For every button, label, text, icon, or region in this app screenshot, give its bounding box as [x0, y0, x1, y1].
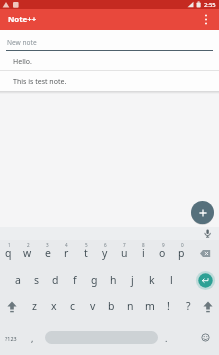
button[interactable]: j — [123, 268, 142, 292]
staticText: ? — [186, 299, 191, 313]
button[interactable]: a — [8, 268, 27, 292]
button[interactable]: l — [162, 268, 181, 292]
staticText: l — [170, 273, 173, 287]
staticText: z — [32, 299, 37, 313]
staticText: This is test note. — [13, 77, 67, 87]
staticText: 2 — [27, 242, 30, 248]
staticText: 5 — [85, 242, 88, 248]
button[interactable] — [201, 299, 215, 315]
staticText: Note++ — [8, 14, 37, 25]
button[interactable]: ! — [159, 294, 178, 318]
staticText: 6 — [104, 242, 107, 248]
button[interactable]: n — [121, 294, 140, 318]
staticText: u — [121, 246, 128, 260]
button[interactable]: ?123 — [2, 330, 20, 346]
button[interactable] — [198, 330, 213, 345]
staticText: r — [64, 246, 69, 260]
staticText: New note — [7, 38, 37, 47]
staticText: Hello. — [13, 57, 32, 67]
staticText: e — [45, 246, 51, 260]
button[interactable]: Note++ — [0, 9, 219, 30]
button[interactable]: o — [153, 241, 172, 265]
staticText: , — [31, 332, 34, 344]
staticText: 7 — [123, 242, 126, 248]
button[interactable]: w — [18, 241, 37, 265]
button[interactable]: c — [63, 294, 82, 318]
staticText: 4 — [65, 242, 68, 248]
staticText: y — [102, 246, 108, 260]
staticText: 2:55 — [204, 1, 216, 9]
button[interactable]: e — [38, 241, 57, 265]
button[interactable]: r — [57, 241, 76, 265]
staticText: i — [142, 246, 145, 260]
button[interactable] — [198, 11, 214, 28]
staticText: f — [73, 273, 77, 287]
staticText: a — [15, 273, 21, 287]
staticText: h — [110, 273, 117, 287]
button[interactable]: k — [142, 268, 161, 292]
staticText: 0 — [181, 242, 184, 248]
staticText: c — [70, 299, 76, 313]
staticText: m — [145, 299, 155, 313]
staticText: . — [165, 332, 168, 344]
staticText: j — [131, 273, 134, 287]
staticText: v — [90, 299, 96, 313]
staticText: s — [34, 273, 40, 287]
button[interactable] — [195, 270, 216, 291]
staticText: 9 — [162, 242, 165, 248]
button[interactable]: y — [95, 241, 114, 265]
staticText: n — [127, 299, 134, 313]
button[interactable]: v — [83, 294, 102, 318]
staticText: ! — [167, 299, 170, 313]
button[interactable]: z — [25, 294, 44, 318]
staticText: p — [178, 246, 185, 260]
button[interactable] — [191, 201, 214, 224]
staticText: 8 — [142, 242, 145, 248]
button[interactable]: ? — [179, 294, 198, 318]
button[interactable]: h — [104, 268, 123, 292]
staticText: q — [5, 246, 12, 260]
button[interactable]: f — [65, 268, 84, 292]
button[interactable] — [45, 331, 158, 344]
staticText: d — [52, 273, 59, 287]
staticText: b — [108, 299, 115, 313]
button[interactable]: q — [0, 241, 18, 265]
staticText: k — [149, 273, 155, 287]
button[interactable]: Hello. — [0, 52, 219, 70]
button[interactable]: , — [23, 326, 42, 350]
button[interactable]: g — [85, 268, 104, 292]
button[interactable]: d — [46, 268, 65, 292]
staticText: x — [51, 299, 57, 313]
button[interactable]: b — [102, 294, 121, 318]
button[interactable]: s — [27, 268, 46, 292]
button[interactable] — [196, 245, 214, 262]
button[interactable] — [5, 299, 19, 315]
staticText: 3 — [46, 242, 49, 248]
button[interactable] — [203, 229, 212, 238]
staticText: t — [84, 246, 88, 260]
staticText: g — [91, 273, 98, 287]
button[interactable]: . — [157, 326, 176, 350]
button[interactable]: p — [172, 241, 191, 265]
button[interactable]: u — [115, 241, 134, 265]
button[interactable]: i — [134, 241, 153, 265]
staticText: 1 — [8, 242, 11, 248]
staticText: o — [159, 246, 166, 260]
button[interactable]: x — [44, 294, 63, 318]
staticText: ?123 — [5, 335, 17, 342]
button[interactable]: This is test note. — [0, 71, 219, 90]
button[interactable]: t — [76, 241, 95, 265]
staticText: w — [23, 246, 32, 260]
button[interactable]: m — [140, 294, 159, 318]
